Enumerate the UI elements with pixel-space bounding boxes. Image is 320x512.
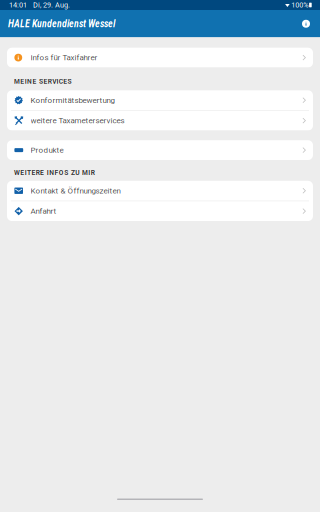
staticText: Di, 29. Aug. (33, 1, 70, 9)
button[interactable]: Infos für Taxifahrer (7, 48, 313, 67)
staticText: Anfahrt (31, 206, 57, 216)
button[interactable]: Konformitätsbewertung (7, 90, 313, 110)
button[interactable]: Produkte (7, 140, 313, 160)
button[interactable]: Info (299, 17, 313, 31)
staticText: MEINE SERVICES (14, 77, 71, 85)
button[interactable]: Kontakt & Öffnungszeiten (7, 181, 313, 201)
staticText: weitere Taxameterservices (31, 116, 125, 125)
staticText: Konformitätsbewertung (31, 95, 115, 105)
staticText: Infos für Taxifahrer (31, 53, 98, 62)
staticText: 100% (291, 1, 308, 9)
staticText: Produkte (31, 145, 64, 155)
staticText: HALE Kundendienst Wessel (8, 18, 115, 30)
staticText: WEITERE INFOS ZU MIR (14, 169, 95, 177)
button[interactable]: Anfahrt (7, 201, 313, 221)
button[interactable]: weitere Taxameterservices (7, 111, 313, 130)
staticText: Kontakt & Öffnungszeiten (31, 186, 121, 195)
staticText: 14:01 (9, 1, 27, 9)
